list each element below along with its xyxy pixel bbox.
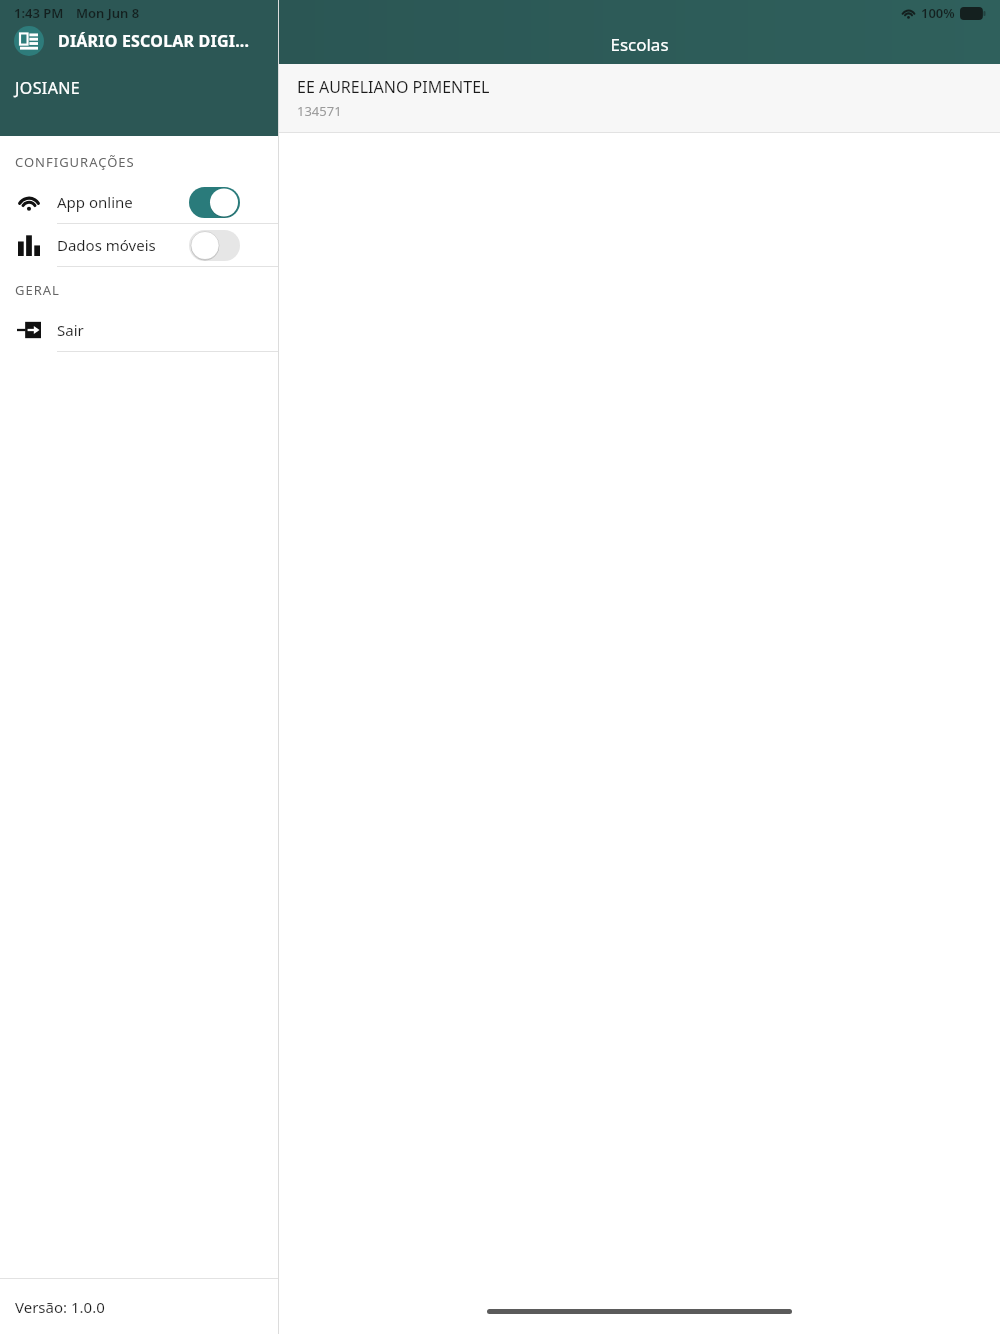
staticText: DIÁRIO ESCOLAR DIGI...: [58, 30, 250, 52]
staticText: Escolas: [610, 33, 669, 56]
button[interactable]: Dados móveis: [189, 230, 240, 261]
staticText: Dados móveis: [57, 235, 156, 255]
staticText: Versão: 1.0.0: [15, 1297, 105, 1317]
staticText: Sair: [57, 320, 84, 340]
button[interactable]: Sair: [0, 309, 279, 351]
button[interactable]: App online: [189, 187, 240, 218]
staticText: CONFIGURAÇÕES: [15, 153, 135, 171]
staticText: 134571: [297, 102, 342, 120]
staticText: EE AURELIANO PIMENTEL: [297, 76, 490, 98]
staticText: JOSIANE: [15, 77, 81, 99]
staticText: GERAL: [15, 281, 60, 299]
staticText: App online: [57, 192, 133, 212]
staticText: Mon Jun 8: [76, 4, 140, 22]
other: Sair: [17, 318, 41, 342]
button[interactable]: EE AURELIANO PIMENTEL: [279, 64, 1000, 132]
button[interactable]: Dados móveis: [0, 224, 279, 266]
staticText: 1:43 PM: [14, 4, 64, 22]
button[interactable]: App online: [0, 181, 279, 223]
button[interactable]: DIÁRIO ESCOLAR DIGI...: [14, 26, 279, 56]
staticText: 100%: [921, 4, 955, 22]
